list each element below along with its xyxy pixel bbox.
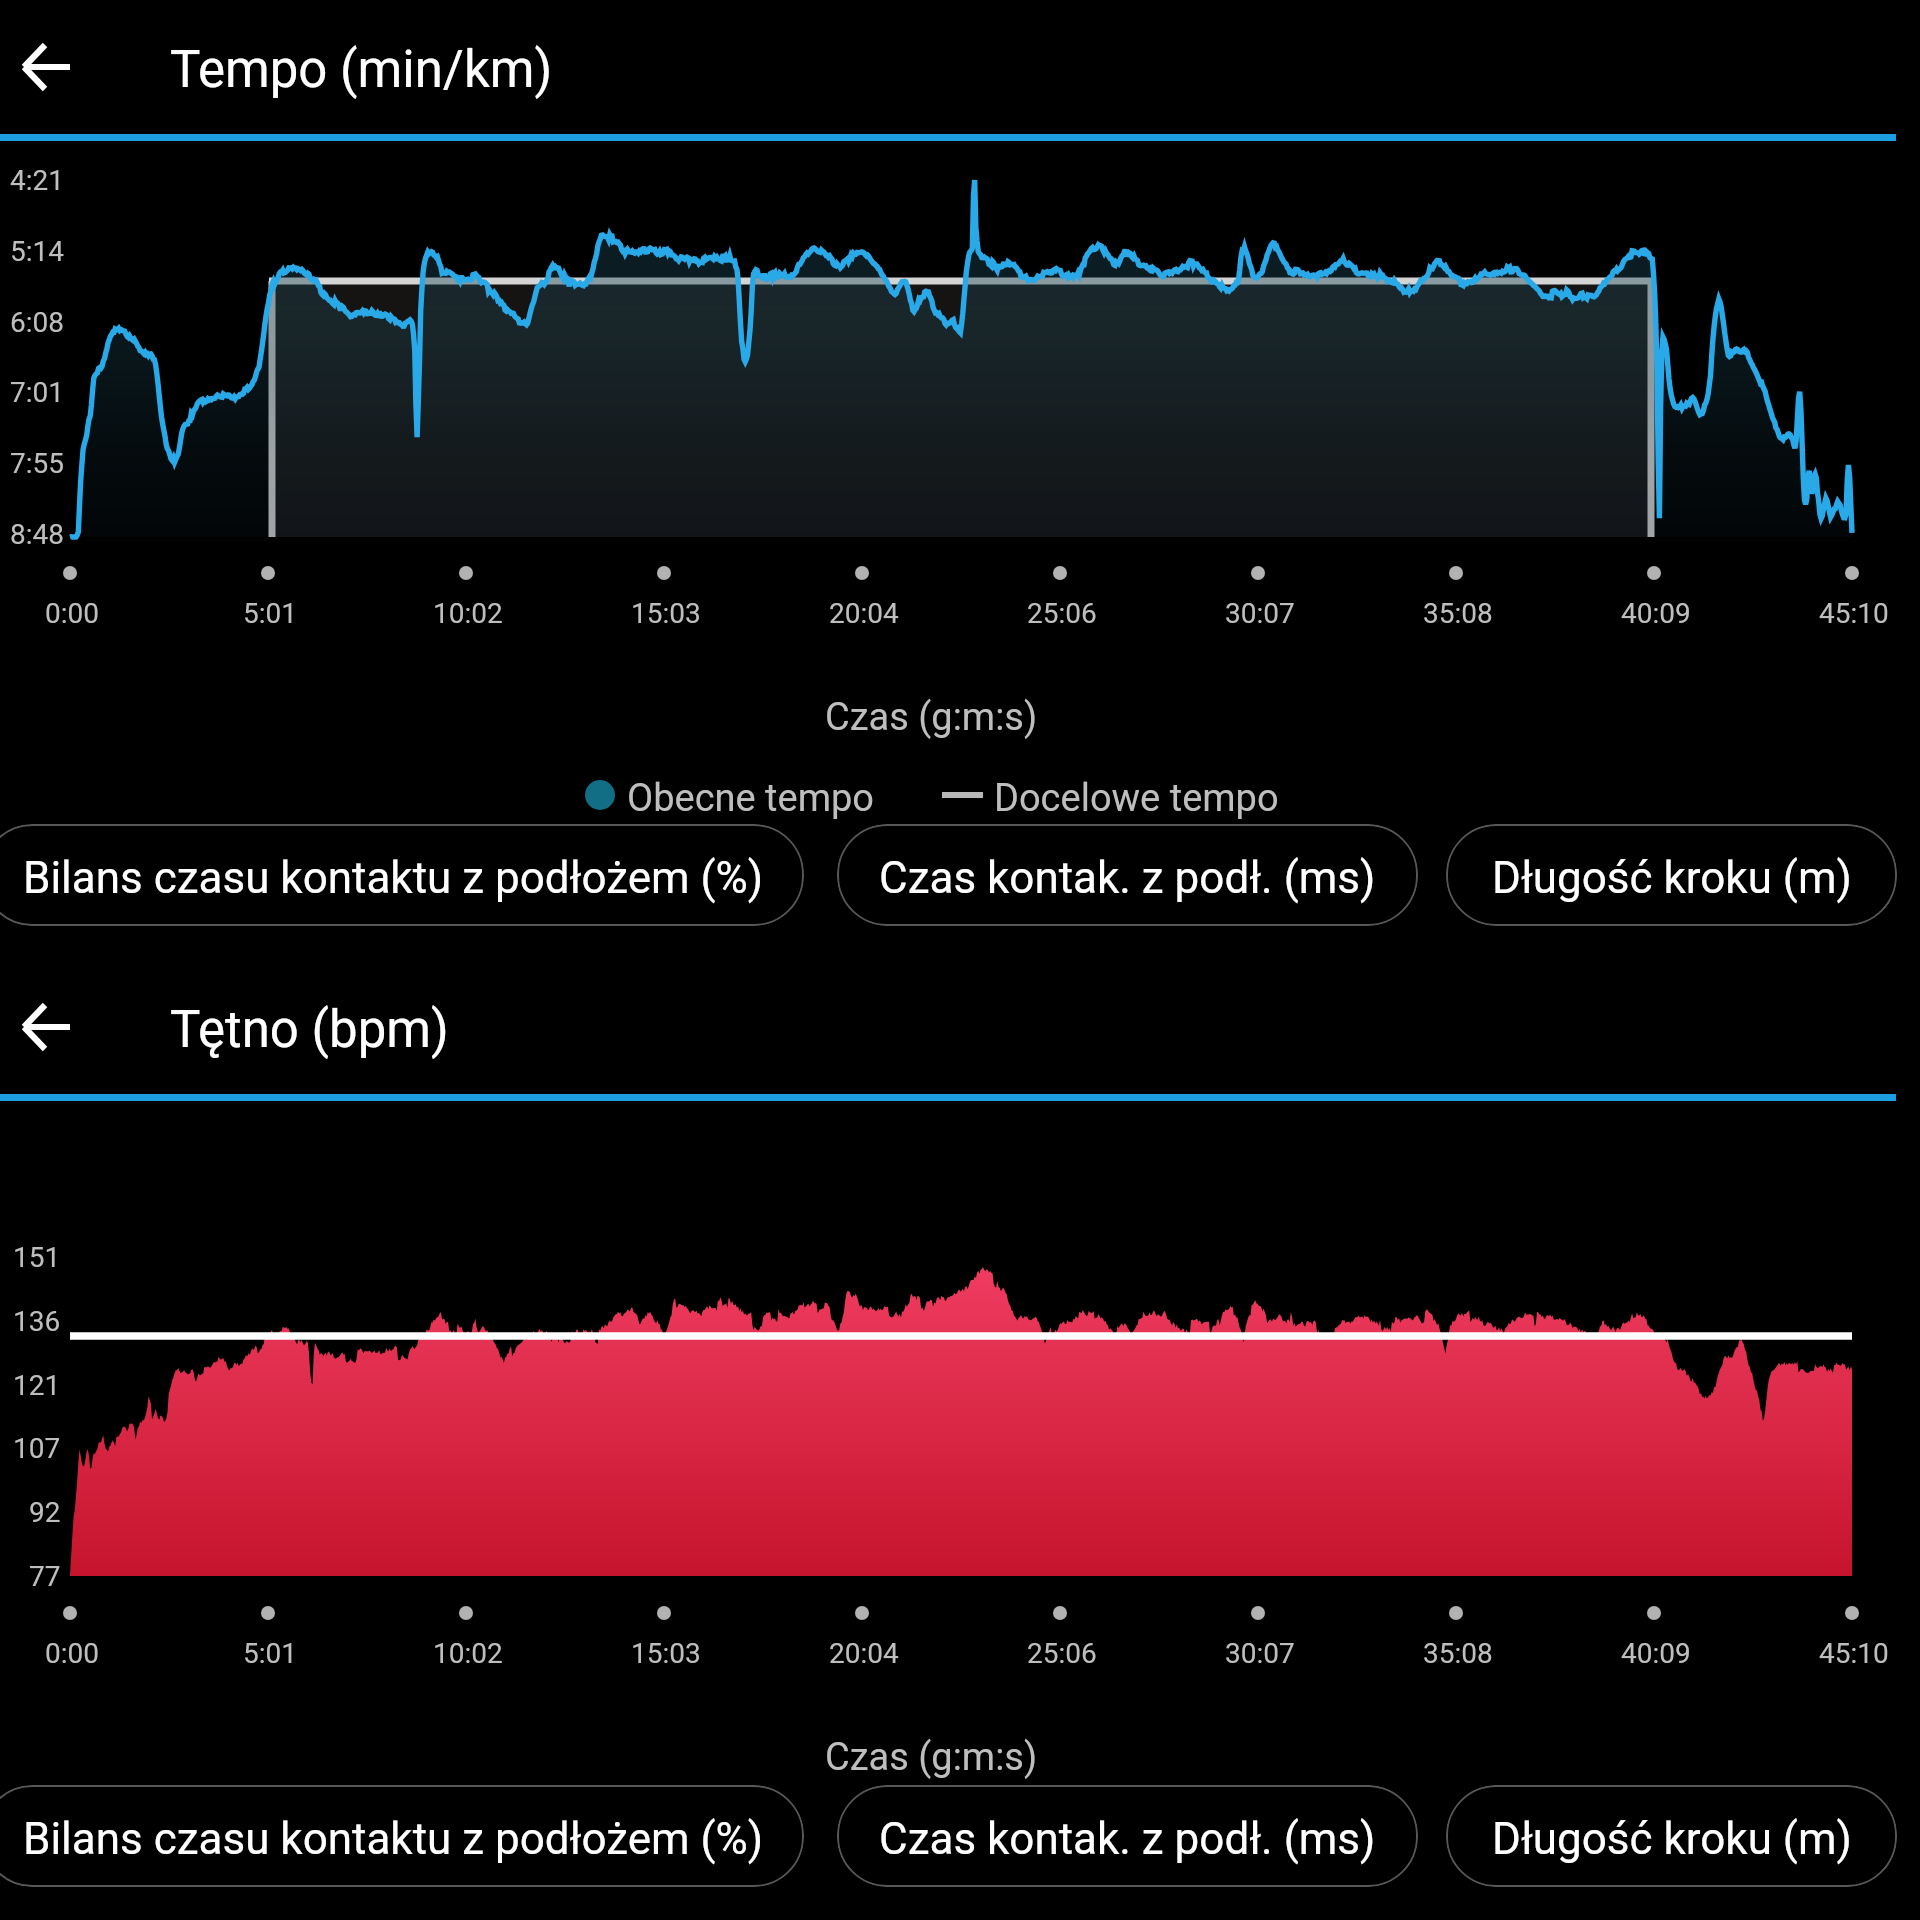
button[interactable]: Back xyxy=(0,960,100,1094)
staticText: 30:07 xyxy=(1225,597,1295,630)
staticText: 77 xyxy=(29,1560,61,1593)
staticText: Czas kontak. z podł. (ms) xyxy=(879,852,1376,904)
staticText: 45:10 xyxy=(1819,1637,1889,1670)
staticText: 121 xyxy=(13,1369,61,1402)
staticText: 45:10 xyxy=(1819,597,1889,630)
staticText: Czas (g:m:s) xyxy=(825,1735,1038,1780)
staticText: 151 xyxy=(13,1241,61,1274)
staticText: 136 xyxy=(13,1305,61,1338)
staticText: 5:01 xyxy=(243,1637,297,1670)
button[interactable]: Długość kroku (m) xyxy=(1446,1785,1897,1887)
staticText: Tętno (bpm) xyxy=(170,1000,449,1060)
staticText: Długość kroku (m) xyxy=(1492,1813,1852,1865)
staticText: 5:14 xyxy=(10,235,64,268)
staticText: 0:00 xyxy=(45,1637,99,1670)
button[interactable]: Czas kontak. z podł. (ms) xyxy=(837,824,1418,926)
staticText: Docelowe tempo xyxy=(994,776,1279,821)
staticText: 40:09 xyxy=(1621,597,1691,630)
staticText: 15:03 xyxy=(631,1637,701,1670)
staticText: Czas kontak. z podł. (ms) xyxy=(879,1813,1376,1865)
staticText: Tempo (min/km) xyxy=(170,40,553,100)
staticText: Czas (g:m:s) xyxy=(825,695,1038,740)
staticText: 15:03 xyxy=(631,597,701,630)
staticText: 20:04 xyxy=(829,597,899,630)
staticText: 6:08 xyxy=(10,306,64,339)
staticText: 7:55 xyxy=(10,447,64,480)
staticText: Obecne tempo xyxy=(627,776,874,821)
staticText: 35:08 xyxy=(1423,597,1493,630)
button[interactable]: Bilans czasu kontaktu z podłożem (%) xyxy=(0,824,804,926)
staticText: 10:02 xyxy=(433,1637,503,1670)
staticText: 92 xyxy=(29,1496,61,1529)
staticText: Bilans czasu kontaktu z podłożem (%) xyxy=(23,852,764,904)
button[interactable]: Back xyxy=(0,0,100,134)
staticText: 0:00 xyxy=(45,597,99,630)
staticText: 8:48 xyxy=(10,518,64,551)
staticText: 40:09 xyxy=(1621,1637,1691,1670)
staticText: 35:08 xyxy=(1423,1637,1493,1670)
button[interactable]: Długość kroku (m) xyxy=(1446,824,1897,926)
button[interactable]: Czas kontak. z podł. (ms) xyxy=(837,1785,1418,1887)
staticText: Bilans czasu kontaktu z podłożem (%) xyxy=(23,1813,764,1865)
staticText: 107 xyxy=(13,1432,61,1465)
staticText: 20:04 xyxy=(829,1637,899,1670)
staticText: 25:06 xyxy=(1027,1637,1097,1670)
staticText: 5:01 xyxy=(243,597,297,630)
staticText: Długość kroku (m) xyxy=(1492,852,1852,904)
staticText: 4:21 xyxy=(10,164,64,197)
button[interactable]: Bilans czasu kontaktu z podłożem (%) xyxy=(0,1785,804,1887)
staticText: 10:02 xyxy=(433,597,503,630)
staticText: 30:07 xyxy=(1225,1637,1295,1670)
staticText: 25:06 xyxy=(1027,597,1097,630)
staticText: 7:01 xyxy=(10,376,64,409)
